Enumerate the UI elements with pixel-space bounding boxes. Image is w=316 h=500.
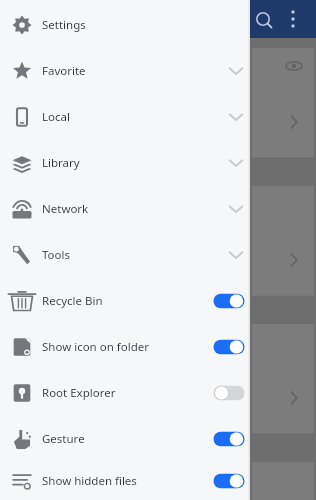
button[interactable]: Search [252, 4, 278, 34]
staticText: Show icon on folder [42, 339, 149, 355]
button[interactable]: Root Explorer [0, 370, 250, 416]
button[interactable]: Settings [0, 2, 250, 48]
staticText: Recycle Bin [42, 293, 103, 309]
staticText: Gesture [42, 431, 85, 447]
staticText: Network [42, 201, 89, 217]
staticText: Settings [42, 17, 86, 33]
button[interactable]: Gesture [0, 416, 250, 462]
button[interactable]: Tools [0, 232, 250, 278]
staticText: Favorite [42, 63, 86, 79]
button[interactable]: Recycle Bin [0, 278, 250, 324]
button[interactable]: Show icon on folder [0, 324, 250, 370]
staticText: Tools [42, 247, 70, 263]
button[interactable]: Network [0, 186, 250, 232]
staticText: Local [42, 109, 70, 125]
button[interactable]: Library [0, 140, 250, 186]
button[interactable]: Show hidden files [0, 462, 250, 500]
button[interactable]: Favorite [0, 48, 250, 94]
staticText: Library [42, 155, 80, 171]
button[interactable]: Local [0, 94, 250, 140]
staticText: Root Explorer [42, 385, 116, 401]
button[interactable]: More options [283, 4, 305, 34]
staticText: Show hidden files [42, 473, 137, 489]
